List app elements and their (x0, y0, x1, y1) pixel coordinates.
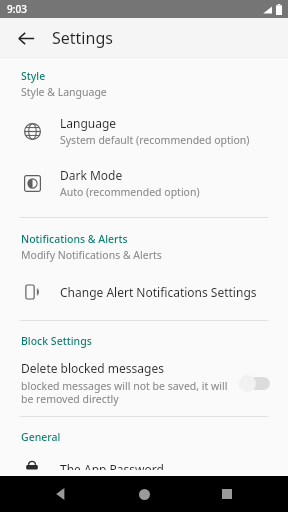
button[interactable]: Change Alert Notifications Settings (0, 274, 288, 310)
button[interactable]: Back (8, 20, 44, 56)
button[interactable]: Language (0, 109, 288, 153)
staticText: blocked messages will not be saved, it w… (21, 379, 230, 406)
button[interactable]: Delete blocked messages (0, 360, 288, 406)
button[interactable]: Back (39, 476, 83, 512)
staticText: Delete blocked messages (21, 360, 164, 376)
staticText: Language (60, 115, 117, 131)
button[interactable]: Delete blocked messages toggle (238, 372, 274, 394)
staticText: Modify Notifications & Alerts (21, 248, 162, 262)
staticText: Auto (recommended option) (60, 185, 200, 199)
staticText: General (21, 430, 61, 444)
button[interactable]: Home (122, 476, 166, 512)
button[interactable]: Recent apps (205, 476, 249, 512)
button[interactable]: Dark Mode (0, 161, 288, 205)
button[interactable]: The App Password (0, 455, 288, 476)
staticText: Settings (52, 27, 113, 49)
staticText: Notifications & Alerts (21, 232, 128, 246)
staticText: Change Alert Notifications Settings (60, 284, 257, 300)
staticText: The App Password (60, 461, 164, 470)
staticText: Style (21, 69, 46, 83)
staticText: Block Settings (21, 334, 92, 348)
staticText: 9:03 (7, 2, 27, 16)
staticText: System default (recommended option) (60, 133, 250, 147)
staticText: Dark Mode (60, 167, 123, 183)
staticText: Style & Language (21, 85, 107, 99)
